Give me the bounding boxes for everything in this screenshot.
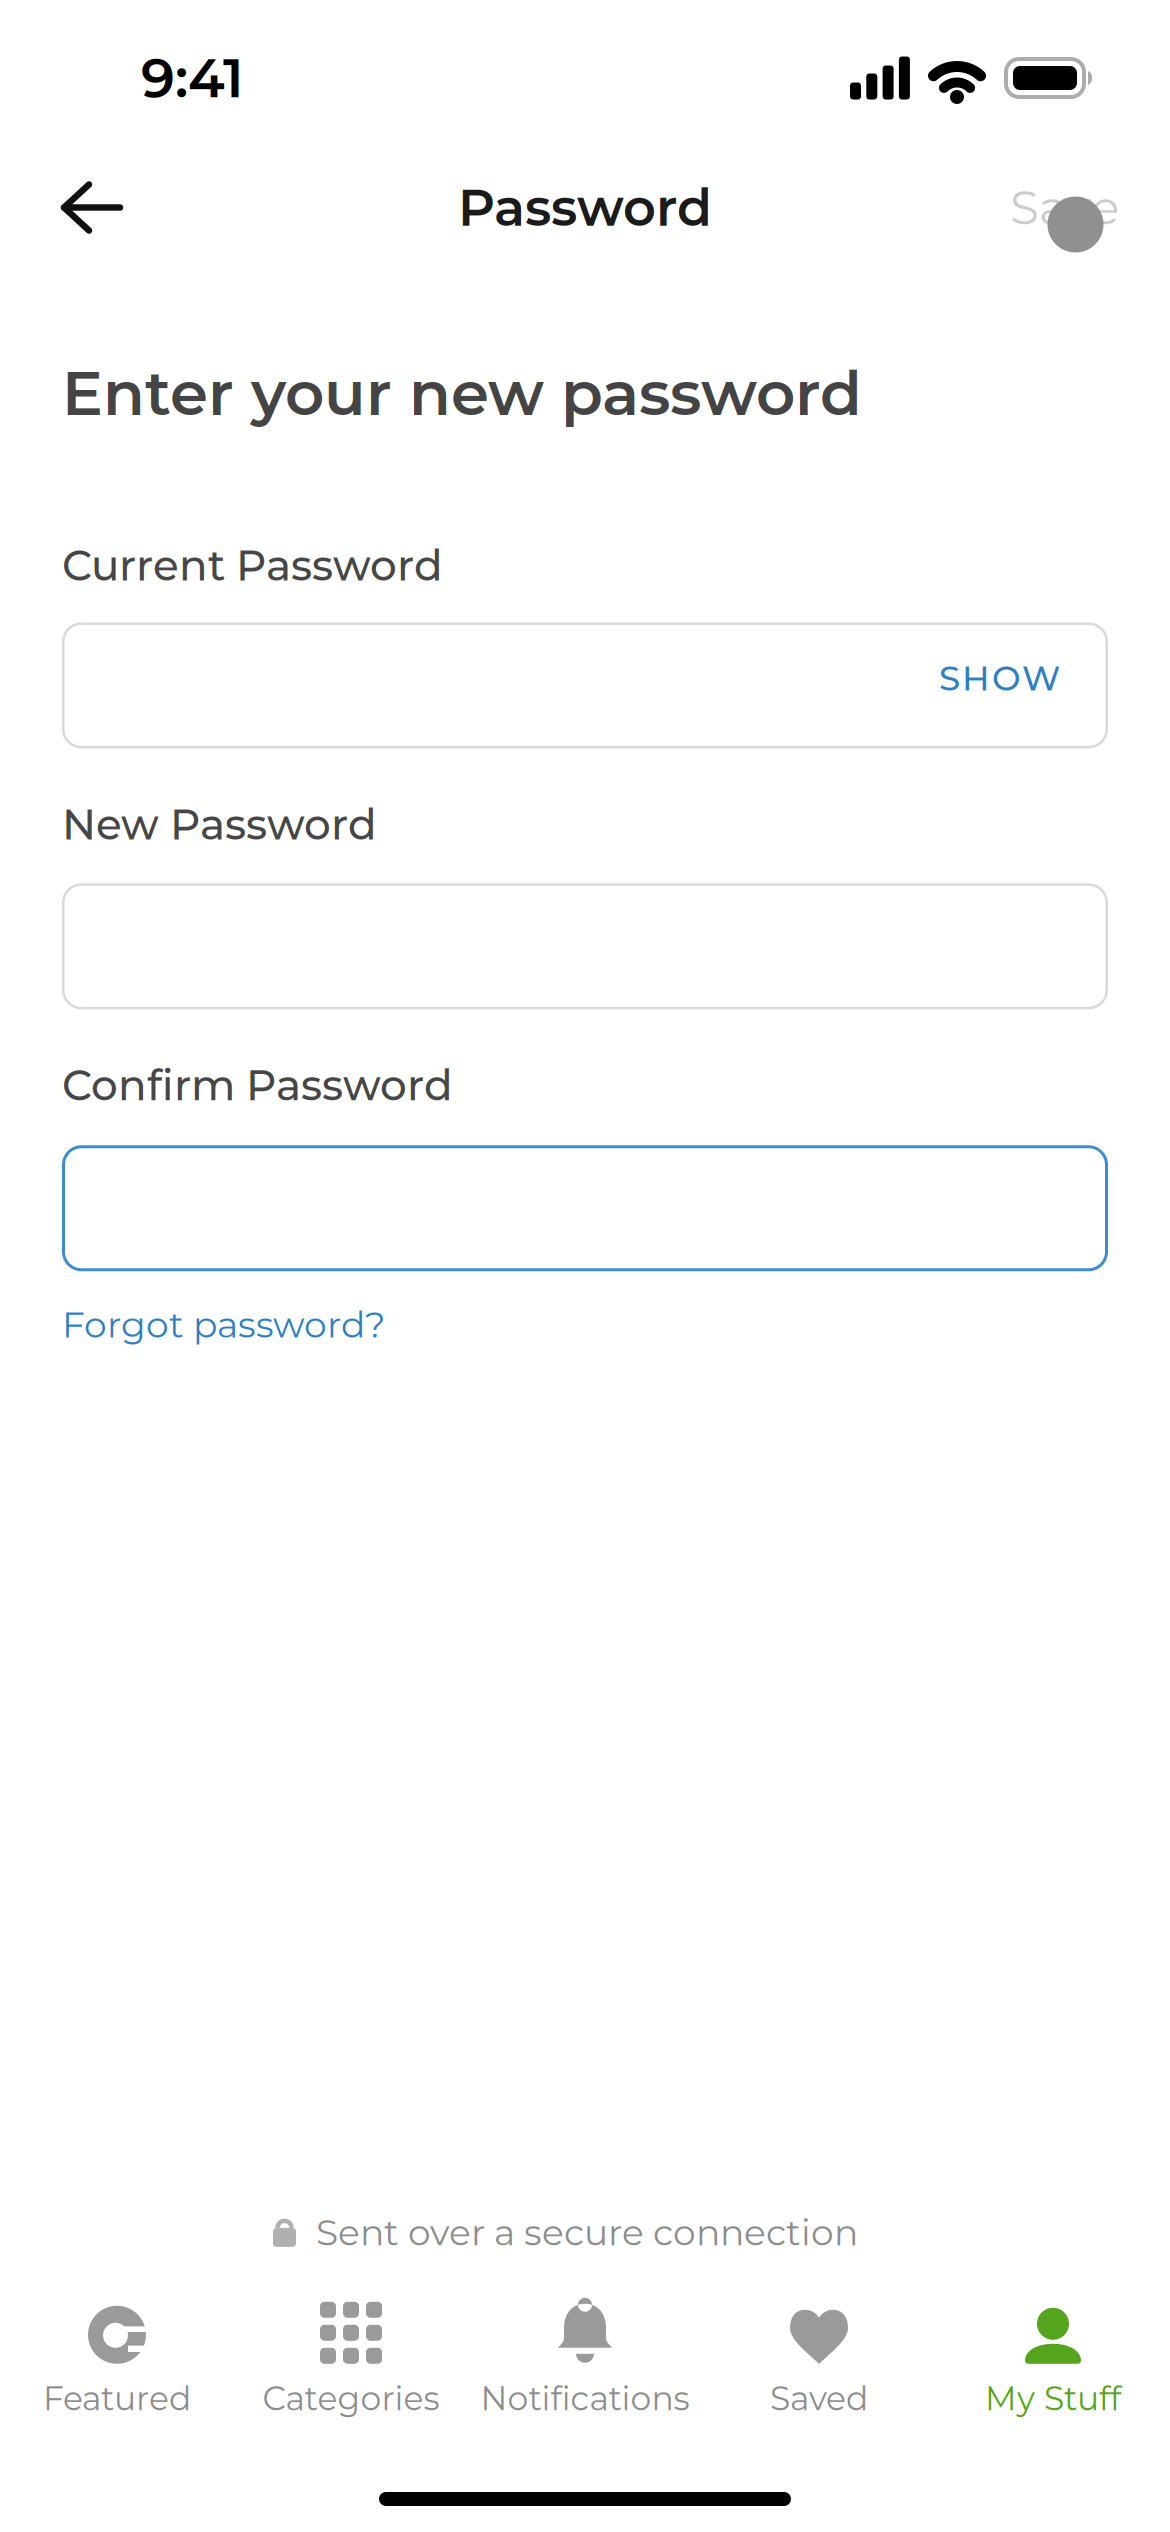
staticText: Save	[1010, 180, 1119, 235]
staticText: Notifications	[480, 2379, 689, 2418]
button[interactable]: SHOW	[939, 665, 1060, 706]
staticText: Confirm Password	[62, 1060, 453, 1110]
staticText: Forgot password?	[62, 1303, 385, 1346]
button[interactable]: Notifications	[468, 2300, 702, 2418]
button[interactable]	[62, 1145, 1108, 1271]
staticText: Featured	[43, 2379, 191, 2418]
staticText: New Password	[62, 799, 377, 849]
button[interactable]: Featured	[0, 2300, 234, 2418]
button[interactable]: My Stuff	[936, 2300, 1170, 2418]
staticText: Sent over a secure connection	[316, 2211, 858, 2254]
button[interactable]	[0, 181, 124, 233]
staticText: 9:41	[141, 46, 244, 110]
staticText: SHOW	[939, 658, 1060, 699]
staticText: Password	[458, 177, 712, 238]
staticText: Saved	[770, 2379, 868, 2418]
staticText: Enter your new password	[62, 357, 862, 429]
button[interactable]: Saved	[702, 2300, 936, 2418]
staticText: Current Password	[62, 540, 443, 590]
staticText: My Stuff	[985, 2379, 1121, 2418]
button[interactable]: Categories	[234, 2300, 468, 2418]
button[interactable]	[62, 883, 1108, 1009]
button[interactable]: Save	[1010, 179, 1170, 235]
button[interactable]: Forgot password?	[62, 1303, 385, 1346]
staticText: Categories	[262, 2379, 439, 2418]
button[interactable]: SHOW	[62, 622, 1108, 748]
